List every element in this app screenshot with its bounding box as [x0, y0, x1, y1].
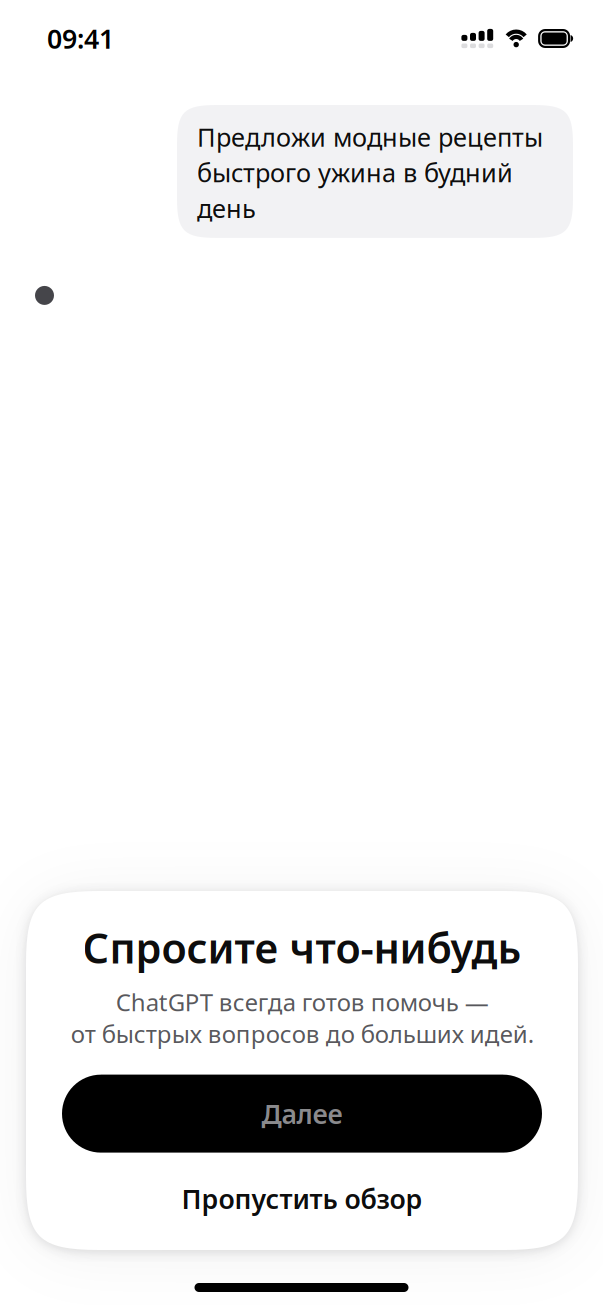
- staticText: Пропустить обзор: [181, 1181, 422, 1216]
- staticText: Спросите что-нибудь: [82, 920, 521, 975]
- staticText: Предложи модные рецепты быстрого ужина в…: [197, 120, 543, 225]
- button[interactable]: Пропустить обзор: [62, 1161, 542, 1237]
- staticText: Далее: [261, 1096, 342, 1131]
- button[interactable]: Далее: [62, 1075, 542, 1153]
- staticText: ChatGPT всегда готов помочь — от быстрых…: [70, 986, 533, 1050]
- staticText: 09:41: [47, 21, 114, 56]
